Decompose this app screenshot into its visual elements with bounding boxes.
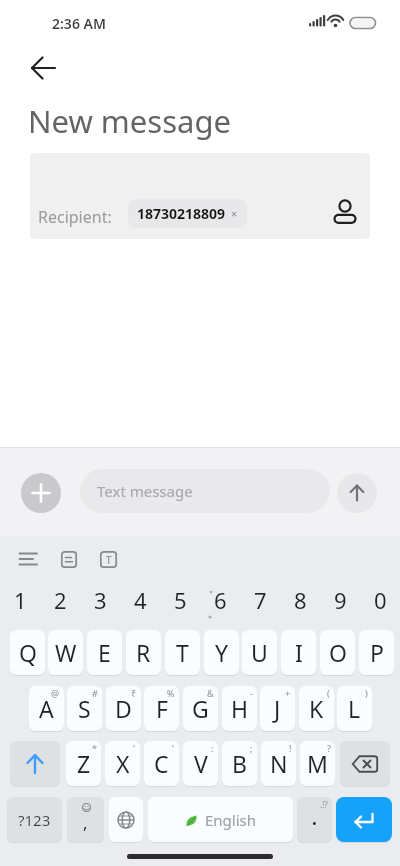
button[interactable] [332, 197, 359, 227]
staticText: ( [327, 687, 330, 699]
button[interactable]: S [67, 686, 102, 731]
staticText: .!? [320, 799, 328, 810]
button[interactable] [109, 797, 143, 842]
button[interactable]: Z [66, 741, 101, 786]
button[interactable]: N [261, 741, 296, 786]
staticText: D [115, 693, 132, 724]
button[interactable]: , [67, 797, 104, 842]
staticText: ! [289, 742, 292, 754]
staticText: F [156, 693, 168, 724]
staticText: U [251, 637, 268, 668]
staticText: A [39, 693, 54, 724]
button[interactable]: ?123 [7, 797, 62, 842]
button[interactable]: Q [10, 630, 45, 675]
staticText: 4 [134, 585, 147, 615]
staticText: K [309, 693, 324, 724]
button[interactable]: P [359, 630, 394, 675]
staticText: J [274, 693, 281, 724]
button[interactable] [61, 551, 77, 568]
button[interactable]: 3 [80, 578, 120, 622]
button[interactable]: Text message [80, 469, 330, 513]
button[interactable]: X [105, 741, 140, 786]
button[interactable]: 8 [280, 578, 320, 622]
button[interactable]: L [337, 686, 372, 731]
staticText: T [176, 637, 189, 668]
button[interactable]: 1 [0, 578, 40, 622]
button[interactable]: 4 [120, 578, 160, 622]
button[interactable]: H [222, 686, 257, 731]
button[interactable]: M [300, 741, 335, 786]
button[interactable] [19, 551, 38, 567]
button[interactable]: Y [204, 630, 239, 675]
button[interactable] [340, 741, 390, 786]
button[interactable]: R [126, 630, 161, 675]
button[interactable] [337, 473, 377, 513]
staticText: T [106, 553, 112, 567]
button[interactable]: A [29, 686, 64, 731]
button[interactable]: B [222, 741, 257, 786]
button[interactable]: F [144, 686, 179, 731]
staticText: + [285, 687, 291, 699]
button[interactable]: English [148, 797, 293, 842]
staticText: X [116, 748, 130, 779]
button[interactable]: Recipient: [30, 153, 370, 239]
staticText: C [154, 748, 169, 779]
staticText: ?123 [18, 810, 51, 830]
staticText: & [207, 687, 214, 699]
button[interactable] [30, 56, 56, 80]
staticText: W [55, 637, 77, 668]
staticText: R [136, 637, 151, 668]
staticText: 0 [374, 585, 387, 615]
button[interactable]: 9 [320, 578, 360, 622]
button[interactable]: 0 [360, 578, 400, 622]
staticText: 8 [294, 585, 307, 615]
button[interactable]: I [281, 630, 316, 675]
staticText: % [167, 687, 175, 699]
staticText: I [295, 637, 303, 668]
button[interactable]: T [100, 551, 117, 568]
button[interactable]: V [183, 741, 218, 786]
staticText: Y [215, 637, 229, 668]
button[interactable]: 5 [160, 578, 200, 622]
staticText: 9 [334, 585, 347, 615]
staticText: New message [28, 100, 231, 142]
staticText: V [194, 748, 208, 779]
staticText: 6 [214, 585, 227, 615]
staticText: P [370, 637, 384, 668]
button[interactable]: O [320, 630, 355, 675]
button[interactable]: U [242, 630, 277, 675]
button[interactable]: G [183, 686, 218, 731]
staticText: 5 [174, 585, 187, 615]
button[interactable]: T [165, 630, 200, 675]
staticText: @ [51, 687, 60, 699]
staticText: E [98, 637, 111, 668]
staticText: Text message [97, 481, 193, 501]
staticText: ' [133, 742, 136, 754]
button[interactable] [21, 473, 61, 513]
button[interactable]: D [106, 686, 141, 731]
button[interactable]: W [48, 630, 83, 675]
button[interactable]: E [87, 630, 122, 675]
staticText: ; [250, 742, 253, 754]
button[interactable]: J [260, 686, 295, 731]
button[interactable]: 7 [240, 578, 280, 622]
button[interactable] [336, 797, 392, 842]
staticText: L [348, 693, 361, 724]
staticText: × [231, 206, 238, 221]
staticText: - [250, 687, 253, 699]
staticText: 18730218809 [137, 204, 226, 223]
staticText: O [329, 637, 347, 668]
staticText: : [211, 742, 214, 754]
staticText: # [92, 687, 98, 699]
staticText: . [312, 807, 317, 830]
staticText: Recipient: [38, 206, 112, 228]
staticText: S [78, 693, 91, 724]
button[interactable] [10, 741, 60, 786]
button[interactable]: 18730218809 [128, 199, 247, 228]
button[interactable]: 6 [200, 578, 240, 622]
button[interactable]: C [144, 741, 179, 786]
staticText: Z [77, 748, 91, 779]
button[interactable]: . [297, 797, 332, 842]
button[interactable]: 2 [40, 578, 80, 622]
button[interactable]: K [299, 686, 334, 731]
